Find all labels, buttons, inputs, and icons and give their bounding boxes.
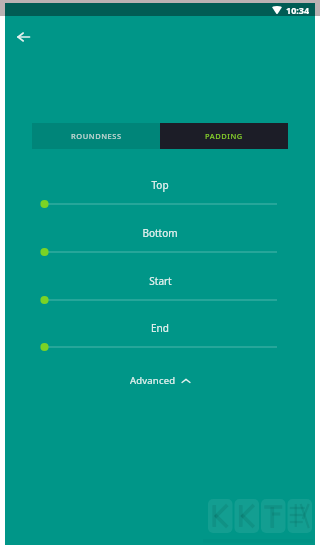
staticText: End [151, 321, 169, 335]
button[interactable]: Back [7, 21, 39, 53]
staticText: 10:34 [286, 4, 310, 16]
button[interactable]: Bottom slider [39, 244, 277, 260]
staticText: Top [151, 178, 169, 192]
button[interactable]: PADDING [160, 123, 288, 149]
button[interactable]: ROUNDNESS [32, 123, 160, 149]
button[interactable]: Start slider [39, 292, 277, 308]
staticText: Bottom [142, 226, 178, 240]
staticText: ROUNDNESS [71, 131, 122, 141]
button[interactable]: Top slider [39, 196, 277, 212]
button[interactable]: End slider [39, 339, 277, 355]
staticText: Advanced [130, 374, 176, 387]
button[interactable]: Advanced [5, 369, 315, 392]
staticText: PADDING [205, 131, 243, 141]
staticText: Start [149, 274, 172, 288]
